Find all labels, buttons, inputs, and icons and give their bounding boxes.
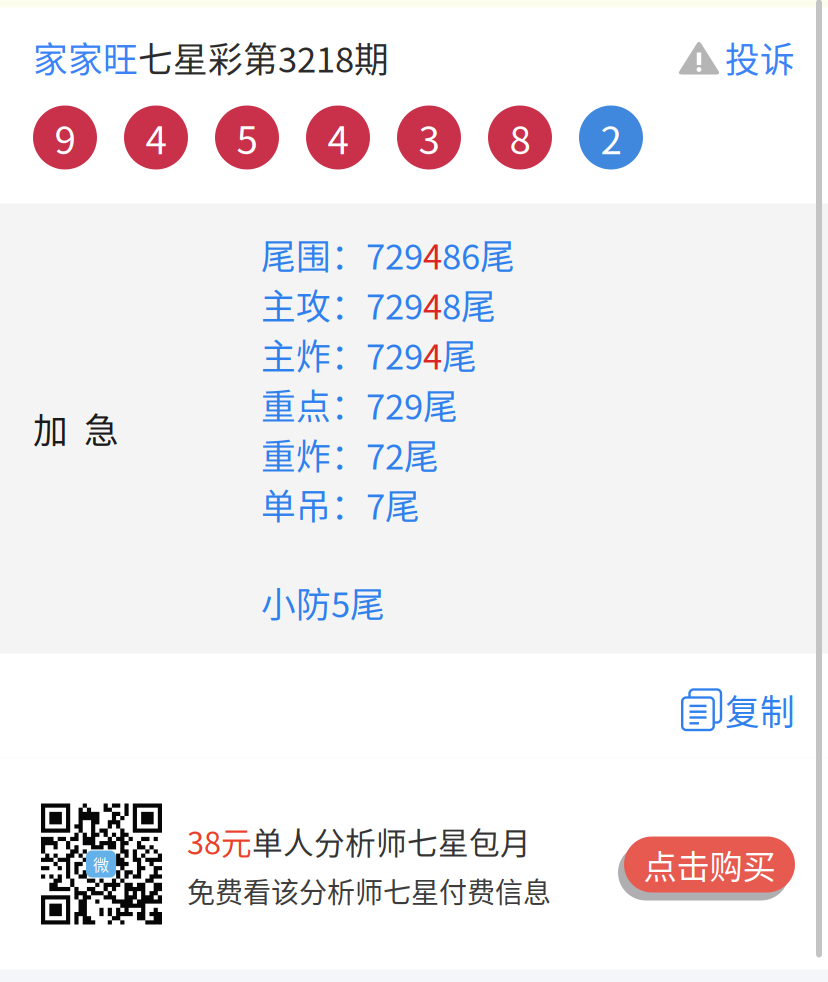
staticText: 72: [366, 429, 404, 480]
button[interactable]: 点击购买: [618, 836, 795, 900]
staticText: 3: [418, 109, 439, 165]
staticText: 家家旺: [33, 32, 138, 83]
staticText: 729: [366, 279, 423, 330]
staticText: 9: [54, 109, 75, 165]
staticText: 重炸：: [261, 429, 366, 480]
staticText: 免费看该分析师七星付费信息: [187, 870, 551, 911]
staticText: 4: [423, 229, 442, 280]
staticText: 微: [93, 852, 109, 876]
staticText: 主炸：: [261, 329, 366, 380]
staticText: 复制: [725, 685, 795, 735]
staticText: 8: [509, 109, 530, 165]
staticText: 7: [366, 479, 385, 530]
staticText: 七星彩第3218期: [138, 32, 389, 83]
staticText: 点击购买: [643, 840, 775, 889]
button[interactable]: 复制: [682, 685, 795, 735]
staticText: 尾: [423, 379, 458, 430]
staticText: 729: [366, 229, 423, 280]
staticText: 2: [600, 109, 621, 165]
staticText: 729: [366, 379, 423, 430]
staticText: 4: [327, 109, 348, 165]
staticText: 729: [366, 329, 423, 380]
staticText: 重点：: [261, 379, 366, 430]
staticText: 投诉: [725, 32, 795, 83]
staticText: 尾: [404, 429, 439, 480]
staticText: 4: [423, 279, 442, 330]
button[interactable]: 家家旺: [33, 32, 389, 83]
staticText: 主攻：: [261, 279, 366, 330]
staticText: 加 急: [33, 403, 119, 454]
staticText: 尾: [385, 479, 420, 530]
staticText: 尾: [442, 329, 477, 380]
staticText: 小防5尾: [261, 577, 385, 628]
staticText: 4: [423, 329, 442, 380]
staticText: 单人分析师七星包月: [252, 819, 531, 863]
staticText: 86尾: [442, 229, 515, 280]
staticText: 尾围：: [261, 229, 366, 280]
button[interactable]: 投诉: [678, 32, 795, 83]
button[interactable]: 扫描二维码: [41, 803, 162, 924]
staticText: 单吊：: [261, 479, 366, 530]
staticText: 5: [236, 109, 257, 165]
staticText: 8尾: [442, 279, 496, 330]
staticText: 38元: [187, 819, 252, 863]
staticText: 4: [145, 109, 166, 165]
